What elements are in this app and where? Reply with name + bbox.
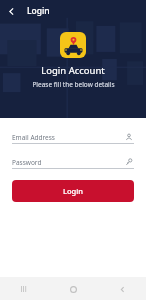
button[interactable]: Recent apps bbox=[14, 279, 34, 299]
button[interactable]: Back bbox=[0, 0, 22, 22]
staticText: Login Account bbox=[41, 64, 105, 77]
button[interactable]: Back bbox=[112, 279, 132, 299]
button[interactable]: Home bbox=[63, 279, 83, 299]
staticText: Please fill the below details bbox=[32, 80, 115, 89]
button[interactable]: Login bbox=[12, 180, 134, 202]
staticText: Login bbox=[63, 186, 83, 196]
staticText: Login bbox=[27, 5, 50, 17]
staticText: Email Address bbox=[12, 133, 124, 142]
staticText: Password bbox=[12, 158, 124, 167]
